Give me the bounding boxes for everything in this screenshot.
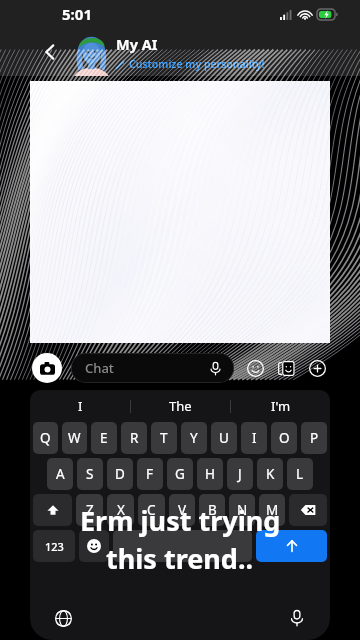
button[interactable]: Emoji	[244, 357, 266, 379]
button[interactable]: Voice message	[207, 360, 223, 376]
staticText: R	[130, 429, 139, 447]
staticText: this trend..	[106, 540, 254, 577]
button[interactable]: I	[241, 422, 267, 454]
staticText: The	[169, 397, 192, 415]
staticText: 5:01	[62, 4, 92, 24]
button[interactable]: Q	[33, 422, 58, 454]
button[interactable]: P	[301, 422, 327, 454]
staticText: My AI	[116, 34, 158, 54]
button[interactable]: R	[121, 422, 147, 454]
button[interactable]: U	[211, 422, 237, 454]
button[interactable]: C	[138, 494, 165, 526]
staticText: Q	[40, 429, 51, 447]
staticText: A	[56, 465, 65, 483]
staticText: I	[78, 397, 83, 415]
staticText: L	[296, 465, 304, 483]
button[interactable]: Chat	[71, 353, 234, 383]
staticText: J	[238, 465, 242, 483]
button[interactable]: B	[199, 494, 225, 526]
button[interactable]: O	[271, 422, 297, 454]
staticText: T	[160, 429, 168, 447]
button[interactable]: A	[47, 458, 73, 490]
button[interactable]: Voice input	[282, 603, 312, 633]
button[interactable]: 123	[33, 530, 75, 562]
staticText: I'm	[271, 397, 291, 415]
button[interactable]: W	[62, 422, 87, 454]
button[interactable]: Change language	[48, 603, 78, 633]
staticText: Erm just trying	[80, 502, 281, 539]
button[interactable]: I'm	[231, 390, 330, 422]
staticText: K	[266, 465, 275, 483]
button[interactable]: K	[257, 458, 283, 490]
staticText: Chat	[85, 359, 114, 377]
button[interactable]: S	[77, 458, 103, 490]
staticText: D	[115, 465, 125, 483]
button[interactable]: Emoji keyboard	[79, 530, 109, 562]
button[interactable]: E	[91, 422, 117, 454]
button[interactable]: Stickers	[275, 357, 297, 379]
button[interactable]: V	[169, 494, 195, 526]
staticText: B	[208, 501, 217, 519]
button[interactable]: Space	[113, 530, 252, 562]
staticText: O	[279, 429, 290, 447]
button[interactable]: J	[227, 458, 253, 490]
button[interactable]: F	[137, 458, 163, 490]
button[interactable]: Add attachment	[306, 357, 328, 379]
staticText: Z	[86, 501, 94, 519]
button[interactable]: I	[30, 390, 130, 422]
staticText: I	[252, 429, 257, 447]
button[interactable]: Camera	[32, 353, 62, 383]
staticText: 123	[45, 539, 64, 554]
staticText: F	[146, 465, 154, 483]
staticText: P	[310, 429, 319, 447]
staticText: V	[178, 501, 187, 519]
button[interactable]: X	[107, 494, 134, 526]
button[interactable]: N	[229, 494, 255, 526]
button[interactable]: The	[131, 390, 230, 422]
staticText: Customize my personality!	[129, 57, 265, 71]
staticText: H	[205, 465, 216, 483]
button[interactable]: Backspace	[289, 494, 327, 526]
button[interactable]: Send	[256, 530, 327, 562]
button[interactable]: H	[197, 458, 223, 490]
staticText: N	[237, 501, 248, 519]
button[interactable]: Back	[36, 38, 64, 66]
button[interactable]: Customize my personality!	[116, 57, 265, 71]
button[interactable]: L	[287, 458, 313, 490]
button[interactable]: D	[107, 458, 133, 490]
button[interactable]: G	[167, 458, 193, 490]
staticText: X	[117, 501, 125, 519]
staticText: U	[219, 429, 229, 447]
staticText: M	[266, 501, 279, 519]
button[interactable]: M	[259, 494, 285, 526]
button[interactable]: Z	[76, 494, 103, 526]
button[interactable]: T	[151, 422, 177, 454]
staticText: W	[68, 429, 81, 447]
button[interactable]: Shift	[33, 494, 72, 526]
staticText: C	[147, 501, 156, 519]
button[interactable]: Y	[181, 422, 207, 454]
staticText: S	[86, 465, 94, 483]
staticText: G	[175, 465, 185, 483]
staticText: Y	[190, 429, 198, 447]
staticText: E	[100, 429, 108, 447]
